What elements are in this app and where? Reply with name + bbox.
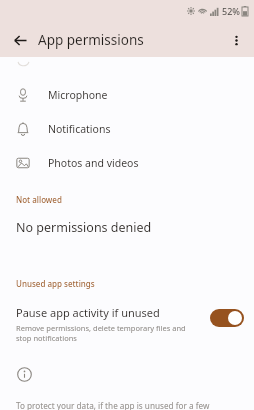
staticText: Not allowed [16, 194, 62, 205]
staticText: Microphone [48, 88, 108, 102]
button[interactable]: Pause app activity if unused [0, 303, 254, 345]
staticText: App permissions [38, 31, 144, 49]
button[interactable]: Pause app activity toggle [210, 309, 244, 327]
button[interactable]: Notifications [0, 112, 254, 146]
staticText: To protect your data, if the app is unus… [16, 400, 242, 410]
staticText: Pause app activity if unused [16, 305, 160, 320]
button[interactable]: More options [222, 26, 250, 54]
staticText: No permissions denied [16, 219, 152, 236]
staticText: 52% [222, 5, 240, 17]
button[interactable]: Microphone [0, 78, 254, 112]
staticText: Photos and videos [48, 156, 139, 170]
staticText: Unused app settings [16, 278, 95, 289]
staticText: Notifications [48, 122, 111, 136]
button[interactable]: Photos and videos [0, 146, 254, 180]
button[interactable]: Back [6, 26, 34, 54]
staticText: Remove permissions, delete temporary fil… [16, 323, 202, 343]
